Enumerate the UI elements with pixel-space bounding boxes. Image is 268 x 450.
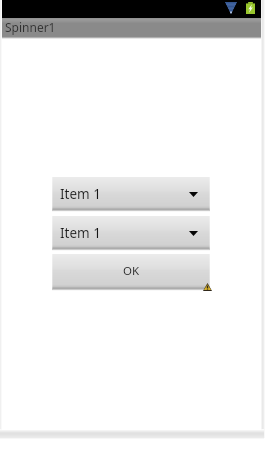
button[interactable]: Item 1: [52, 216, 210, 251]
button[interactable]: Item 1: [52, 177, 210, 212]
other: Network signal: [225, 2, 237, 14]
staticText: Item 1: [60, 185, 101, 203]
staticText: OK: [123, 263, 140, 279]
staticText: Item 1: [60, 224, 101, 242]
staticText: Spinner1: [5, 19, 56, 35]
other: Battery charging: [246, 2, 255, 14]
button[interactable]: OK: [52, 254, 210, 291]
other: Warning: [203, 283, 212, 291]
